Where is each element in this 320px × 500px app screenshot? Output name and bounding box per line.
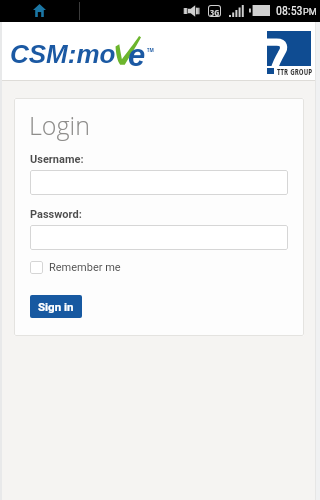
button[interactable]: Home	[33, 4, 46, 17]
button[interactable]: Remember me	[30, 261, 121, 274]
staticText: Username:	[30, 153, 84, 166]
staticText: 3G	[210, 6, 220, 16]
staticText: PM	[303, 7, 317, 18]
staticText: TTR GROUP	[277, 66, 313, 77]
staticText: e	[128, 38, 146, 73]
staticText: CSM:mo	[10, 39, 116, 68]
staticText: Sign in	[38, 300, 74, 313]
staticText: Remember me	[49, 261, 121, 274]
staticText: 08:53	[276, 4, 303, 18]
staticText: Login	[29, 108, 90, 142]
button[interactable]: Sign in	[30, 295, 82, 318]
staticText: Password:	[30, 208, 82, 221]
staticText: TM	[147, 46, 154, 53]
button[interactable]	[30, 170, 288, 195]
button[interactable]	[30, 225, 288, 250]
